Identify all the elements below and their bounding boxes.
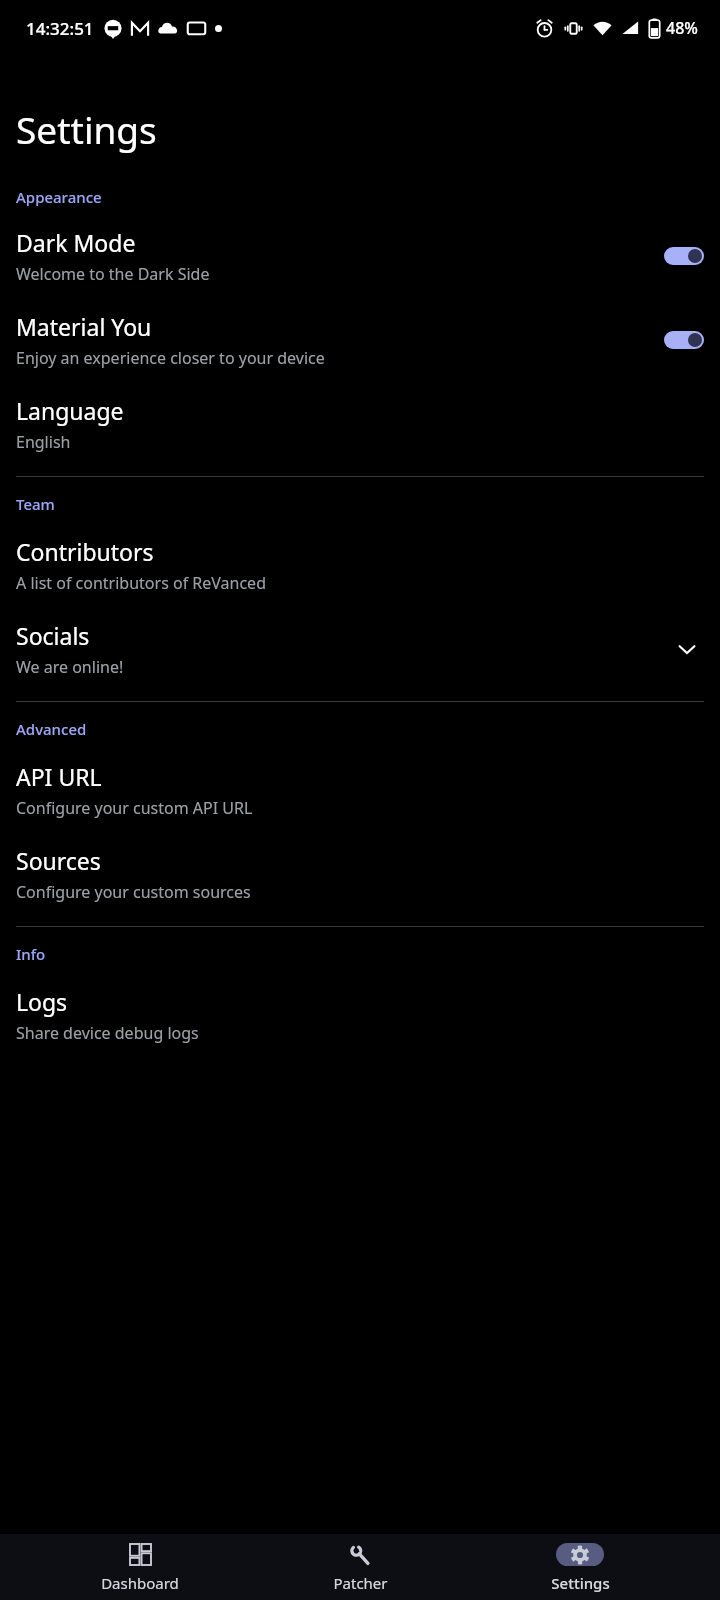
button[interactable]: Material You	[0, 309, 720, 371]
staticText: English	[16, 431, 71, 453]
button[interactable]: Contributors	[0, 534, 720, 596]
staticText: Contributors	[16, 536, 154, 567]
staticText: Info	[16, 944, 46, 964]
staticText: Socials	[16, 620, 90, 651]
staticText: Settings	[16, 104, 157, 154]
staticText: Team	[16, 494, 55, 514]
staticText: A list of contributors of ReVanced	[16, 572, 266, 594]
button[interactable]: Patcher	[280, 1534, 440, 1593]
staticText: Sources	[16, 845, 101, 876]
staticText: Configure your custom sources	[16, 881, 251, 903]
staticText: 48%	[666, 17, 698, 39]
other: Expand	[670, 632, 704, 666]
staticText: We are online!	[16, 656, 124, 678]
staticText: Logs	[16, 986, 68, 1017]
button[interactable]: Language	[0, 393, 720, 455]
staticText: Advanced	[16, 719, 87, 739]
staticText: Appearance	[16, 187, 102, 207]
staticText: 14:32:51	[26, 17, 94, 40]
staticText: Language	[16, 395, 124, 426]
staticText: Enjoy an experience closer to your devic…	[16, 347, 325, 369]
button[interactable]: Sources	[0, 843, 720, 905]
staticText: Dashboard	[101, 1573, 179, 1593]
staticText: Material You	[16, 311, 152, 342]
button[interactable]: Dark Mode	[0, 225, 720, 287]
button[interactable]: Socials	[0, 618, 720, 680]
staticText: Configure your custom API URL	[16, 797, 253, 819]
staticText: API URL	[16, 761, 102, 792]
button[interactable]: API URL	[0, 759, 720, 821]
staticText: Settings	[551, 1573, 610, 1593]
button[interactable]: Toggle	[664, 331, 704, 349]
staticText: Share device debug logs	[16, 1022, 199, 1044]
button[interactable]: Settings	[500, 1534, 660, 1593]
staticText: Patcher	[333, 1573, 388, 1593]
staticText: Welcome to the Dark Side	[16, 263, 210, 285]
button[interactable]: Logs	[0, 984, 720, 1046]
button[interactable]: Dashboard	[60, 1534, 220, 1593]
staticText: Dark Mode	[16, 227, 136, 258]
button[interactable]: Toggle	[664, 247, 704, 265]
